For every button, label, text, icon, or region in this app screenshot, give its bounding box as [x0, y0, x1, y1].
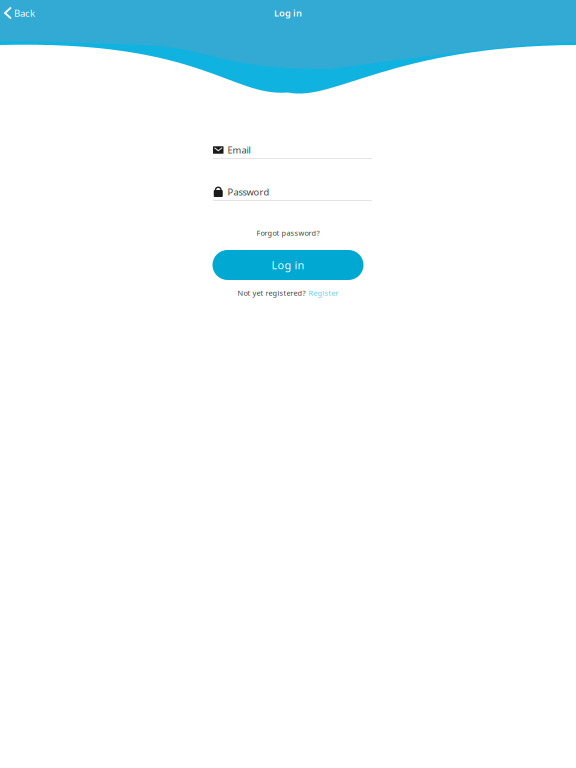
staticText: Email: [227, 144, 250, 156]
staticText: Password: [227, 186, 269, 198]
staticText: Log in: [271, 257, 304, 272]
button[interactable]: Register: [308, 288, 338, 298]
staticText: Register: [308, 288, 338, 298]
staticText: Not yet registered?: [237, 288, 305, 298]
staticText: Forgot password?: [256, 228, 319, 238]
button[interactable]: Forgot password?: [256, 226, 319, 240]
staticText: Back: [14, 6, 35, 20]
button[interactable]: Back: [0, 2, 35, 24]
button[interactable]: Log in: [212, 250, 363, 280]
staticText: Log in: [274, 7, 302, 19]
